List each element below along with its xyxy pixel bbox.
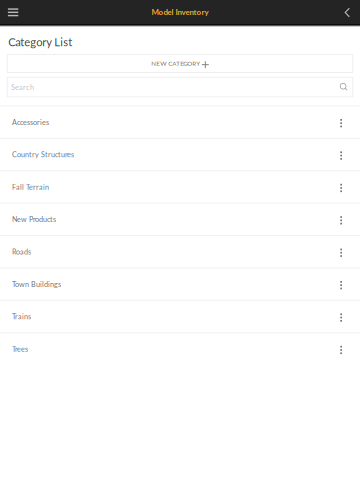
staticText: Category List bbox=[8, 35, 72, 48]
staticText: Trees bbox=[12, 345, 28, 353]
button[interactable]: Accessories bbox=[0, 105, 360, 138]
button[interactable]: Fall Terrain bbox=[0, 170, 360, 203]
staticText: NEW CATEGORY bbox=[151, 60, 200, 67]
staticText: Country Structures bbox=[12, 150, 74, 159]
button[interactable]: Trees bbox=[0, 332, 360, 365]
staticText: Roads bbox=[12, 247, 31, 256]
button[interactable]: Town Buildings bbox=[0, 267, 360, 300]
staticText: Fall Terrain bbox=[12, 183, 49, 191]
staticText: Trains bbox=[12, 312, 31, 321]
staticText: New Products bbox=[12, 215, 56, 224]
button[interactable]: Back bbox=[320, 0, 360, 24]
button[interactable]: Menu bbox=[0, 0, 40, 24]
staticText: Search bbox=[11, 83, 34, 91]
staticText: Accessories bbox=[12, 118, 49, 126]
button[interactable]: Roads bbox=[0, 235, 360, 267]
button[interactable]: New Products bbox=[0, 203, 360, 235]
staticText: Model Inventory bbox=[151, 7, 208, 17]
button[interactable]: Country Structures bbox=[0, 138, 360, 170]
staticText: Town Buildings bbox=[12, 280, 61, 288]
button[interactable]: Trains bbox=[0, 300, 360, 332]
button[interactable]: NEW CATEGORY bbox=[7, 54, 353, 73]
